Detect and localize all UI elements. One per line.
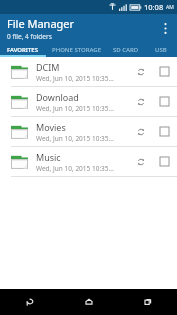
button[interactable]: Sync	[131, 122, 151, 142]
button[interactable]	[151, 87, 177, 116]
button[interactable]	[151, 57, 177, 86]
staticText: AM	[166, 4, 174, 11]
button[interactable]: Sync	[131, 92, 151, 112]
button[interactable]: Movies	[0, 117, 177, 147]
staticText: DCIM	[36, 61, 60, 73]
staticText: FAVORITES	[7, 46, 39, 54]
button[interactable]	[151, 147, 177, 176]
staticText: 10:08	[144, 2, 164, 12]
button[interactable]: Download	[0, 87, 177, 117]
staticText: Wed, Jun 10, 2015 10:35...	[36, 74, 114, 83]
button[interactable]: More options	[153, 16, 177, 40]
staticText: USB	[155, 46, 167, 54]
staticText: PHONE STORAGE	[52, 46, 101, 54]
button[interactable]: SD CARD	[106, 42, 146, 57]
staticText: 0 file, 4 folders	[7, 32, 52, 41]
button[interactable]: Sync	[131, 62, 151, 82]
button[interactable]: Recent apps	[118, 289, 177, 315]
staticText: Wed, Jun 10, 2015 10:35...	[36, 134, 114, 143]
staticText: Download	[36, 91, 79, 103]
staticText: SD CARD	[113, 46, 139, 54]
button[interactable]: DCIM	[0, 57, 177, 87]
staticText: Wed, Jun 10, 2015 10:35...	[36, 104, 114, 113]
button[interactable]	[151, 117, 177, 146]
staticText: Music	[36, 151, 61, 163]
button[interactable]: FAVORITES	[0, 42, 46, 57]
button[interactable]: Music	[0, 147, 177, 177]
button[interactable]: Sync	[131, 152, 151, 172]
staticText: File Manager	[7, 16, 75, 31]
button[interactable]: USB	[146, 42, 176, 57]
button[interactable]: Home	[59, 289, 118, 315]
button[interactable]: PHONE STORAGE	[46, 42, 106, 57]
staticText: Wed, Jun 10, 2015 10:35...	[36, 164, 114, 173]
staticText: Movies	[36, 121, 66, 133]
button[interactable]: Back	[0, 289, 59, 315]
